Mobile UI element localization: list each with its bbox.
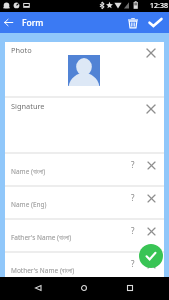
button[interactable]: Clear — [145, 258, 157, 270]
staticText: ? — [131, 225, 135, 236]
staticText: Signature — [11, 101, 45, 111]
staticText: ? — [131, 159, 135, 170]
button[interactable]: Name (বাংলা) — [5, 154, 164, 185]
staticText: Photo — [11, 45, 32, 55]
button[interactable]: Save — [139, 244, 163, 268]
button[interactable]: Help — [127, 158, 139, 170]
button[interactable]: Delete — [122, 12, 144, 33]
button[interactable]: Father's Name (বাংলা) — [5, 220, 164, 251]
staticText: Father's Name (বাংলা) — [11, 233, 72, 242]
staticText: Mother's Name (বাংলা) — [11, 266, 75, 275]
button[interactable]: Name (Eng) — [5, 187, 164, 218]
button[interactable]: Help — [127, 191, 139, 203]
staticText: ? — [131, 258, 135, 269]
button[interactable]: Clear — [145, 103, 157, 115]
button[interactable]: Recents — [118, 276, 142, 299]
button[interactable]: Home — [72, 276, 96, 299]
staticText: 12:38 — [150, 1, 168, 11]
button[interactable]: Clear — [145, 159, 157, 171]
button[interactable]: Clear — [145, 225, 157, 237]
button[interactable]: Signature — [5, 98, 164, 152]
button[interactable]: Help — [127, 257, 139, 269]
button[interactable]: Clear — [145, 192, 157, 204]
button[interactable]: Back — [26, 276, 50, 299]
staticText: Form — [22, 17, 44, 29]
staticText: Name (বাংলা) — [11, 167, 46, 176]
button[interactable]: Mother's Name (বাংলা) — [5, 253, 164, 277]
button[interactable]: Back — [0, 14, 17, 31]
button[interactable]: Photo — [5, 42, 164, 96]
staticText: Name (Eng) — [11, 200, 47, 209]
button[interactable]: Clear — [145, 47, 157, 59]
button[interactable]: Help — [127, 224, 139, 236]
button[interactable]: Done — [144, 12, 166, 33]
staticText: ? — [131, 192, 135, 203]
